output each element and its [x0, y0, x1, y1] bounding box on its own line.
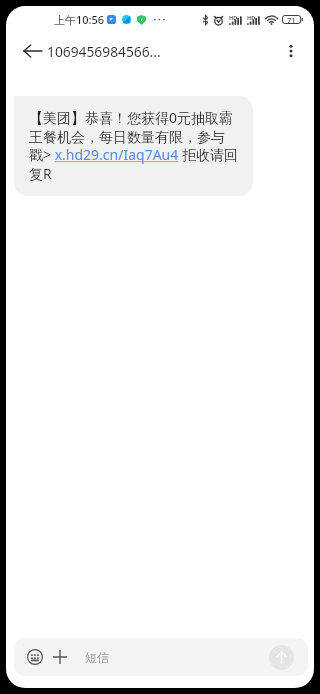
button[interactable]: Add attachment	[53, 650, 67, 664]
button[interactable]: Emoji	[27, 649, 43, 665]
staticText: 短信	[85, 650, 109, 665]
staticText: HD	[247, 14, 256, 21]
staticText: 上午10:56	[54, 12, 105, 27]
staticText: HD	[229, 14, 238, 21]
staticText: 【美团】恭喜！您获得0元抽取霸王餐机会，每日数量有限，参与戳> x.hd29.c…	[29, 108, 238, 184]
button[interactable]: Send	[269, 645, 294, 670]
button[interactable]: Back	[24, 43, 42, 59]
button[interactable]: More options	[279, 39, 303, 63]
staticText: 1069456984566...	[47, 42, 161, 61]
staticText: 71	[287, 15, 296, 24]
button[interactable]: 【美团】恭喜！您获得0元抽取霸王餐机会，每日数量有限，参与戳> x.hd29.c…	[14, 96, 253, 196]
